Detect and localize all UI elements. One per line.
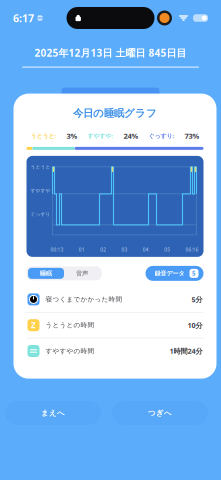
staticText: 73% — [184, 131, 199, 141]
staticText: 録音データ — [154, 269, 184, 277]
staticText: 今日の睡眠グラフ — [73, 107, 157, 120]
button[interactable]: Z — [26, 313, 203, 338]
staticText: 3% — [66, 131, 77, 141]
staticText: 睡眠 — [40, 269, 52, 277]
staticText: 10分 — [187, 320, 202, 330]
button[interactable]: 録音データ — [145, 266, 203, 281]
staticText: Z — [31, 320, 36, 331]
button[interactable]: つぎへ — [112, 401, 208, 425]
staticText: すやすや: — [87, 132, 113, 140]
button[interactable]: すやすやの時間 — [26, 338, 203, 363]
staticText: うとうとの時間 — [45, 321, 94, 329]
staticText: 05 — [164, 246, 170, 253]
staticText: 2025年12月13日 土曜日 845日目 — [34, 46, 186, 60]
button[interactable]: 寝つくまでかかった時間 — [26, 287, 203, 312]
staticText: まえへ — [41, 408, 65, 418]
staticText: 5 — [192, 269, 196, 278]
staticText: つぎへ — [148, 408, 172, 418]
staticText: 03 — [121, 246, 127, 253]
staticText: ぐっすり — [30, 211, 50, 217]
staticText: 01 — [79, 246, 85, 253]
staticText: 04 — [143, 246, 149, 253]
staticText: 1時間24分 — [169, 346, 202, 356]
staticText: 寝つくまでかかった時間 — [45, 295, 122, 303]
staticText: 24% — [123, 131, 138, 141]
button[interactable]: 睡眠 — [28, 268, 64, 279]
button[interactable]: 音声 — [64, 268, 100, 279]
staticText: 02 — [100, 246, 106, 253]
staticText: 5分 — [191, 294, 202, 304]
staticText: うとうと: — [30, 132, 56, 140]
staticText: すやすや — [30, 188, 50, 194]
staticText: ぐっすり: — [148, 132, 174, 140]
staticText: うとうと — [30, 164, 50, 170]
staticText: 6:17 — [13, 11, 34, 25]
staticText: すやすやの時間 — [45, 347, 94, 355]
staticText: 00:13 — [50, 246, 63, 253]
staticText: 音声 — [76, 269, 88, 277]
staticText: 06:16 — [185, 246, 198, 253]
button[interactable]: まえへ — [5, 401, 101, 425]
